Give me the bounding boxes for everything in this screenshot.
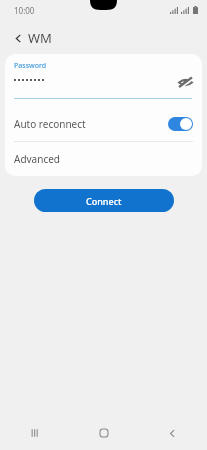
button[interactable]: Advanced: [5, 142, 202, 176]
staticText: Connect: [86, 195, 122, 207]
button[interactable]: Recent apps: [0, 416, 69, 450]
button[interactable]: Back: [138, 416, 207, 450]
button[interactable]: Back: [5, 25, 31, 51]
staticText: WM: [28, 29, 52, 47]
button[interactable]: Home: [69, 416, 138, 450]
button[interactable]: Auto reconnect: [168, 117, 193, 131]
button[interactable]: Connect: [34, 189, 174, 212]
staticText: Advanced: [14, 152, 60, 166]
staticText: Auto reconnect: [14, 117, 86, 131]
button[interactable]: Show password: [173, 70, 197, 94]
button[interactable]: Auto reconnect: [5, 106, 202, 141]
button[interactable]: Password: [5, 54, 202, 106]
staticText: Password: [14, 61, 47, 71]
staticText: 10:00: [14, 5, 35, 16]
